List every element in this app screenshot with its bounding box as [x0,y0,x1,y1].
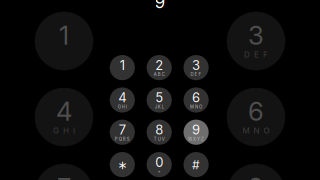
button[interactable]: 1 [35,12,93,70]
button[interactable]: # [183,152,209,177]
staticText: J K L [155,104,164,109]
button[interactable]: 8 [147,120,172,145]
staticText: 9 [192,122,200,138]
button[interactable]: 6 [183,87,209,113]
button[interactable]: 3 [227,12,285,70]
staticText: ∗ [117,158,127,172]
staticText: 9 [248,172,264,180]
staticText: 6 [192,90,200,105]
staticText: P Q R S [115,136,130,142]
staticText: M N O [190,104,202,109]
button[interactable]: 2 [147,55,172,80]
staticText: D E F [191,72,202,77]
staticText: # [192,157,200,172]
staticText: 7 [57,172,71,180]
staticText: G H I [118,104,127,109]
staticText: 3 [192,57,200,73]
staticText: T U V [154,136,165,142]
button[interactable]: 9 [183,120,209,145]
staticText: W X Y Z [188,136,204,142]
staticText: 6 [248,96,264,127]
button[interactable]: 7 [35,164,93,180]
staticText: 3 [248,20,264,51]
staticText: 7 [119,122,126,138]
staticText: 4 [56,96,72,127]
staticText: 2 [155,57,163,73]
staticText: D E F [244,50,268,59]
staticText: 1 [59,20,69,51]
staticText: A B C [154,72,165,77]
staticText: M N O [242,126,269,135]
button[interactable]: ∗ [110,152,135,177]
button[interactable]: 3 [183,55,209,80]
button[interactable]: 0 [147,152,172,177]
button[interactable]: 1 [110,55,135,80]
staticText: 9 [154,0,165,12]
staticText: 5 [155,90,163,105]
staticText: 0 [155,154,163,170]
button[interactable]: 9 [227,164,285,180]
staticText: G H I [53,126,75,135]
staticText: + [158,169,161,174]
button[interactable]: 4 [35,88,93,146]
button[interactable]: 5 [147,87,172,113]
button[interactable]: 4 [110,87,135,113]
staticText: 4 [118,90,126,105]
staticText: 8 [155,122,163,138]
button[interactable]: 6 [227,88,285,146]
button[interactable]: 7 [110,120,135,145]
staticText: 1 [120,57,125,73]
